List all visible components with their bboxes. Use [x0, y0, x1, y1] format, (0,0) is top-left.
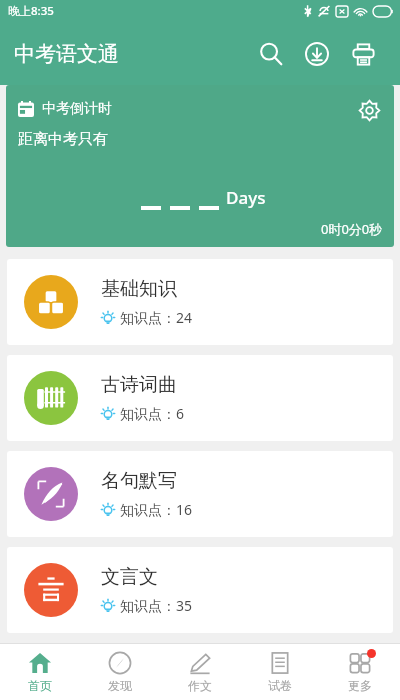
staticText: 更多: [348, 678, 372, 693]
button[interactable]: 中考倒计时: [6, 85, 394, 247]
staticText: 中考倒计时: [42, 100, 112, 118]
button[interactable]: Settings: [354, 95, 384, 125]
button[interactable]: 试卷: [240, 644, 320, 700]
staticText: 文言文: [101, 565, 158, 589]
staticText: 知识点：16: [120, 500, 193, 519]
staticText: 晚上8:35: [8, 3, 54, 19]
staticText: 知识点：6: [120, 404, 185, 423]
staticText: 中考语文通: [14, 41, 119, 67]
staticText: 知识点：35: [120, 596, 193, 615]
button[interactable]: 更多: [320, 644, 400, 700]
button[interactable]: Download: [294, 31, 340, 77]
button[interactable]: 文言文: [7, 547, 393, 633]
staticText: 试卷: [268, 678, 292, 693]
button[interactable]: Search: [248, 31, 294, 77]
button[interactable]: 作文: [160, 644, 240, 700]
staticText: Days: [226, 186, 266, 209]
staticText: 作文: [188, 678, 212, 693]
staticText: 发现: [108, 678, 132, 693]
staticText: 距离中考只有: [18, 130, 108, 149]
button[interactable]: 首页: [0, 644, 80, 700]
button[interactable]: 古诗词曲: [7, 355, 393, 441]
staticText: 知识点：24: [120, 308, 193, 327]
button[interactable]: 名句默写: [7, 451, 393, 537]
staticText: 古诗词曲: [101, 373, 177, 397]
button[interactable]: 基础知识: [7, 259, 393, 345]
staticText: 名句默写: [101, 469, 177, 493]
staticText: 首页: [28, 678, 52, 693]
button[interactable]: Print: [340, 31, 386, 77]
staticText: 0时0分0秒: [321, 220, 383, 238]
button[interactable]: 发现: [80, 644, 160, 700]
staticText: 基础知识: [101, 277, 177, 301]
